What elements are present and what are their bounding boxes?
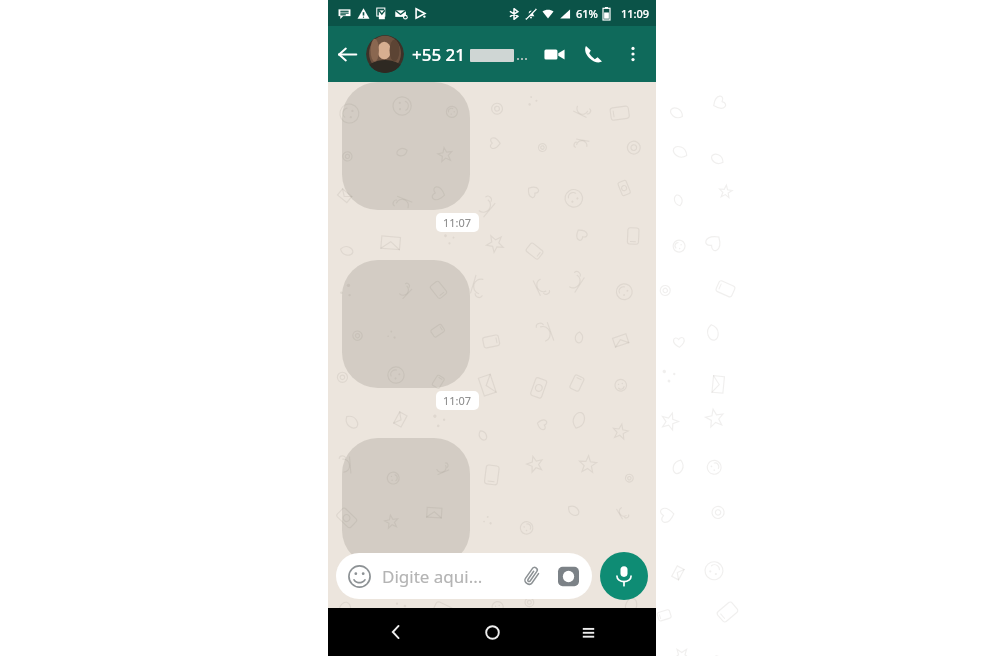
button[interactable]: Voice call [574, 34, 614, 74]
staticText: 11:09 [621, 6, 650, 21]
button[interactable]: +55 21 [412, 26, 534, 82]
button[interactable]: Back [328, 35, 366, 73]
staticText: Digite aqui... [382, 565, 518, 588]
staticText: 11:07 [443, 571, 472, 586]
staticText: ... [516, 44, 529, 64]
button[interactable]: Camera [554, 562, 582, 590]
button[interactable]: Contact photo [366, 35, 404, 73]
button[interactable]: 11:07 [342, 82, 479, 232]
staticText: 61% [576, 6, 598, 21]
staticText: +55 21 [412, 43, 470, 66]
button[interactable]: Video call [534, 34, 574, 74]
button[interactable]: More options [614, 35, 652, 73]
button[interactable]: Record voice message [600, 552, 648, 600]
staticText: 11:07 [443, 215, 472, 230]
button[interactable]: Emoji [336, 553, 592, 599]
button[interactable]: Recent apps [560, 608, 616, 656]
staticText: 11:07 [443, 393, 472, 408]
button[interactable]: Back [368, 608, 424, 656]
button[interactable]: Home [464, 608, 520, 656]
button[interactable]: 11:07 [342, 260, 479, 410]
button[interactable]: Attach [518, 562, 546, 590]
button[interactable]: 11:07 [342, 438, 479, 588]
button[interactable]: Emoji [346, 563, 372, 589]
